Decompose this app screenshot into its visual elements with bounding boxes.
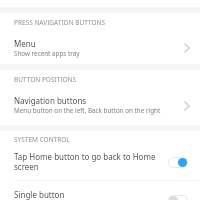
button[interactable]: Menu [0,31,200,63]
staticText: PRESS NAVIGATION BUTTONS [14,18,106,27]
button[interactable]: Navigation buttons [0,88,200,120]
button[interactable]: Single button [0,181,200,200]
other: Open Navigation buttons settings [181,100,193,112]
staticText: Tap Home button to go back to Home scree… [14,151,170,173]
staticText: Show recent apps tray [14,49,80,58]
button[interactable]: Tap Home button to go back to Home scree… [0,147,200,180]
other: Open Menu settings [181,42,193,54]
staticText: Single button [14,189,65,200]
staticText: BUTTON POSITIONS [14,75,77,84]
staticText: SYSTEM CONTROL [14,135,70,144]
staticText: Menu [14,38,36,49]
staticText: Menu button on the left, Back button on … [14,106,161,115]
staticText: Navigation buttons [14,95,87,106]
